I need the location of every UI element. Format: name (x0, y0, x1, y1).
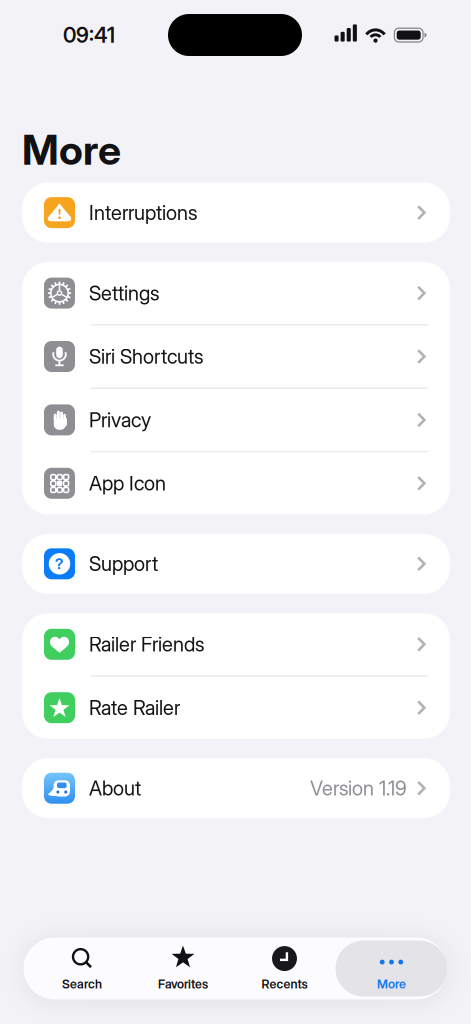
button[interactable]: Interruptions (22, 183, 450, 243)
button[interactable]: Siri Shortcuts (22, 325, 450, 387)
staticText: Search (62, 977, 102, 991)
staticText: More (377, 977, 406, 991)
staticText: Support (89, 552, 158, 576)
staticText: Recents (261, 977, 307, 991)
staticText: Siri Shortcuts (89, 344, 203, 369)
staticText: Railer Friends (89, 632, 204, 656)
staticText: App Icon (89, 471, 166, 495)
staticText: Settings (89, 281, 159, 305)
staticText: ? (55, 555, 64, 573)
button[interactable]: About (22, 758, 450, 818)
staticText: Version 1.19 (310, 776, 407, 800)
button[interactable]: App Icon (22, 452, 450, 514)
button[interactable]: Search (31, 937, 132, 999)
button[interactable]: Favorites (132, 937, 233, 999)
button[interactable]: Railer Friends (22, 613, 450, 675)
staticText: More (22, 125, 121, 175)
button[interactable]: Recents (233, 937, 335, 999)
staticText: Interruptions (89, 200, 197, 225)
staticText: Rate Railer (89, 696, 180, 720)
staticText: Favorites (158, 977, 208, 991)
button[interactable]: More (335, 937, 447, 999)
button[interactable]: ? (22, 534, 450, 594)
staticText: 09:41 (63, 22, 115, 48)
staticText: Privacy (89, 408, 151, 432)
button[interactable]: Rate Railer (22, 677, 450, 739)
button[interactable]: Privacy (22, 389, 450, 451)
staticText: About (89, 776, 141, 800)
button[interactable]: Settings (22, 262, 450, 324)
